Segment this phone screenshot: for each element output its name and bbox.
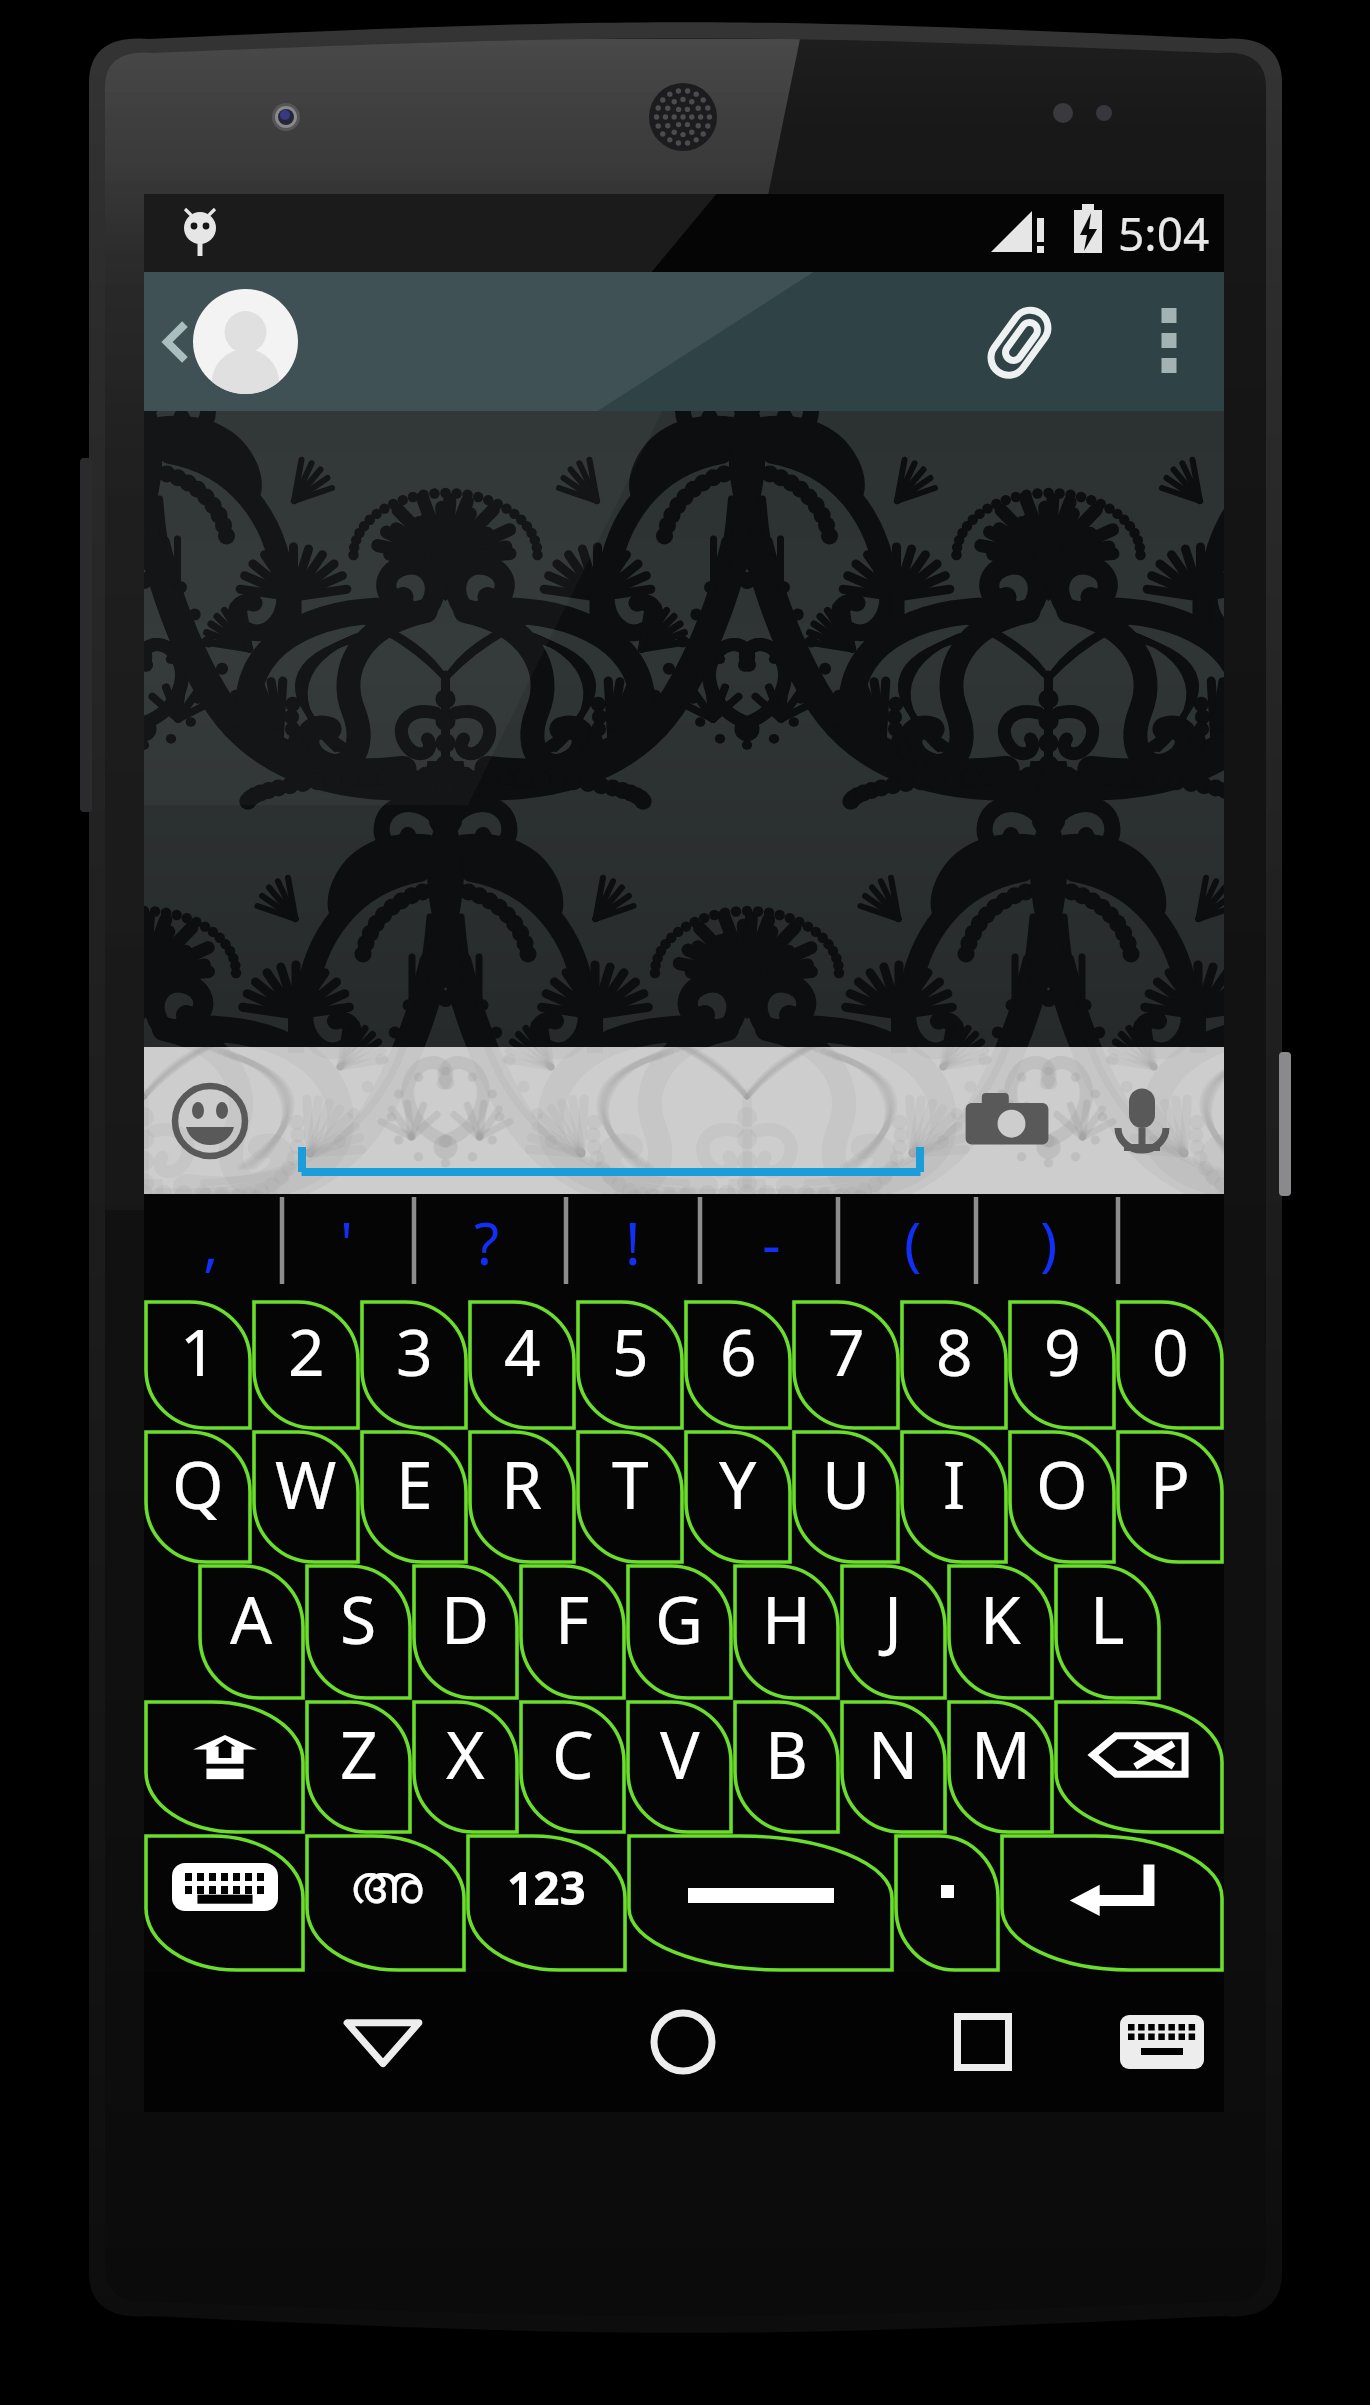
button[interactable]: Recent apps (913, 1972, 1053, 2112)
button[interactable]: ? (452, 1194, 522, 1294)
button[interactable]: T (576, 1430, 684, 1564)
staticText: 1 (180, 1308, 217, 1395)
staticText: 5 (612, 1308, 649, 1395)
button[interactable]: Back (148, 303, 204, 381)
button[interactable]: C (519, 1700, 626, 1834)
button[interactable]: G (626, 1564, 733, 1700)
button[interactable]: Keyboard settings (144, 1834, 305, 1972)
staticText: K (980, 1573, 1021, 1663)
staticText: L (1090, 1573, 1125, 1663)
staticText: F (555, 1573, 590, 1663)
staticText: ' (340, 1203, 354, 1282)
button[interactable]: Camera (962, 1076, 1052, 1166)
staticText: 5:04 (1118, 202, 1210, 265)
button[interactable]: I (900, 1430, 1008, 1564)
button[interactable]: Delete (1054, 1700, 1224, 1834)
button[interactable]: Space (627, 1834, 894, 1972)
button[interactable]: Malayalam (305, 1834, 466, 1972)
button[interactable]: U (792, 1430, 900, 1564)
staticText: 3 (396, 1308, 433, 1395)
staticText: 9 (1044, 1308, 1081, 1395)
staticText: S (340, 1573, 377, 1663)
button[interactable]: - (736, 1194, 806, 1294)
button[interactable]: A (198, 1564, 305, 1700)
button[interactable]: ( (878, 1194, 948, 1294)
button[interactable]: Switch keyboard (1092, 1972, 1224, 2112)
button[interactable]: 123 (466, 1834, 627, 1972)
button[interactable]: M (947, 1700, 1054, 1834)
staticText: V (660, 1708, 700, 1798)
button[interactable]: 0 (1116, 1300, 1224, 1430)
staticText: O (1036, 1438, 1088, 1528)
button[interactable]: . (894, 1834, 1000, 1972)
button[interactable]: 8 (900, 1300, 1008, 1430)
button[interactable]: Enter (1000, 1834, 1224, 1972)
staticText: N (868, 1708, 919, 1798)
staticText: 4 (504, 1308, 541, 1395)
button[interactable]: P (1116, 1430, 1224, 1564)
staticText: ) (1040, 1203, 1058, 1282)
button[interactable]: Attach (976, 298, 1064, 386)
button[interactable]: Q (144, 1430, 252, 1564)
button[interactable]: 9 (1008, 1300, 1116, 1430)
button[interactable]: L (1054, 1564, 1161, 1700)
button[interactable]: R (468, 1430, 576, 1564)
staticText: ? (474, 1203, 500, 1282)
button[interactable]: B (733, 1700, 840, 1834)
button[interactable]: Emoji (170, 1081, 250, 1161)
button[interactable]: D (412, 1564, 519, 1700)
button[interactable]: V (626, 1700, 733, 1834)
staticText: ! (625, 1203, 641, 1282)
button[interactable]: X (412, 1700, 519, 1834)
staticText: H (762, 1573, 811, 1663)
button[interactable]: W (252, 1430, 360, 1564)
button[interactable]: H (733, 1564, 840, 1700)
button[interactable]: ! (598, 1194, 668, 1294)
staticText: - (762, 1203, 781, 1282)
button[interactable]: 1 (144, 1300, 252, 1430)
staticText: ( (904, 1203, 922, 1282)
button[interactable]: N (840, 1700, 947, 1834)
button[interactable]: S (305, 1564, 412, 1700)
staticText: M (971, 1708, 1031, 1798)
staticText: D (441, 1573, 490, 1663)
staticText: 123 (507, 1856, 586, 1919)
button[interactable]: K (947, 1564, 1054, 1700)
button[interactable]: , (176, 1194, 246, 1294)
button[interactable]: Voice message (1098, 1077, 1186, 1165)
button[interactable]: More options (1140, 292, 1198, 392)
staticText: , (203, 1203, 219, 1282)
button[interactable]: ' (312, 1194, 382, 1294)
button[interactable]: 6 (684, 1300, 792, 1430)
staticText: E (396, 1438, 433, 1528)
staticText: 2 (288, 1308, 325, 1395)
button[interactable]: 3 (360, 1300, 468, 1430)
staticText: A (230, 1573, 273, 1663)
button[interactable]: O (1008, 1430, 1116, 1564)
button[interactable]: 7 (792, 1300, 900, 1430)
staticText: B (765, 1708, 808, 1798)
staticText: 0 (1152, 1308, 1189, 1395)
staticText: U (822, 1438, 871, 1528)
staticText: T (612, 1438, 649, 1528)
button[interactable]: F (519, 1564, 626, 1700)
staticText: G (655, 1573, 704, 1663)
button[interactable]: E (360, 1430, 468, 1564)
staticText: Y (719, 1438, 757, 1528)
button[interactable]: Back (313, 1972, 453, 2112)
staticText: അ (349, 1860, 423, 1914)
staticText: Q (172, 1438, 224, 1528)
staticText: Z (340, 1708, 378, 1798)
button[interactable]: Y (684, 1430, 792, 1564)
staticText: P (1150, 1438, 1190, 1528)
button[interactable]: 5 (576, 1300, 684, 1430)
button[interactable]: 2 (252, 1300, 360, 1430)
button[interactable]: 4 (468, 1300, 576, 1430)
button[interactable]: Z (305, 1700, 412, 1834)
button[interactable]: ) (1014, 1194, 1084, 1294)
button[interactable]: Home (613, 1972, 753, 2112)
staticText: X (446, 1708, 485, 1798)
button[interactable]: Contact (193, 289, 298, 394)
button[interactable]: Shift (144, 1700, 305, 1834)
button[interactable]: J (840, 1564, 947, 1700)
